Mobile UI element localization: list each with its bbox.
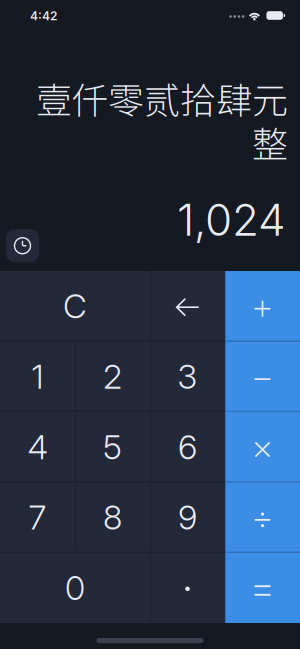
button[interactable]: 9 xyxy=(150,482,225,553)
button[interactable]: 0 xyxy=(0,553,150,623)
staticText: 2 xyxy=(103,356,122,397)
button[interactable]: 5 xyxy=(75,412,150,482)
staticText: 4 xyxy=(27,427,47,467)
staticText: 8 xyxy=(103,497,122,537)
button[interactable]: 4 xyxy=(0,412,75,482)
staticText: 5 xyxy=(103,427,122,467)
button[interactable]: Decimal point xyxy=(150,553,225,623)
staticText: 6 xyxy=(178,427,197,467)
staticText: 整 xyxy=(252,116,288,168)
button[interactable]: 2 xyxy=(75,341,150,412)
button[interactable]: 3 xyxy=(150,341,225,412)
button[interactable]: C xyxy=(0,271,150,341)
staticText: 壹仟零贰拾肆元 xyxy=(36,72,288,124)
staticText: 9 xyxy=(178,497,197,537)
button[interactable]: 8 xyxy=(75,482,150,553)
button[interactable]: Delete xyxy=(150,271,225,341)
button[interactable]: 1 xyxy=(0,341,75,412)
staticText: 0 xyxy=(65,568,85,608)
button[interactable]: Multiply xyxy=(225,412,300,482)
staticText: 7 xyxy=(28,497,46,537)
button[interactable]: Subtract xyxy=(225,341,300,412)
staticText: 4:42 xyxy=(30,9,57,23)
staticText: 1 xyxy=(31,356,43,397)
button[interactable]: History xyxy=(6,229,39,262)
button[interactable]: 7 xyxy=(0,482,75,553)
staticText: 1,024 xyxy=(177,193,286,246)
staticText: 3 xyxy=(177,356,197,397)
button[interactable]: Add xyxy=(225,271,300,341)
staticText: C xyxy=(63,286,87,326)
button[interactable]: Equals xyxy=(225,553,300,623)
button[interactable]: 6 xyxy=(150,412,225,482)
button[interactable]: Divide xyxy=(225,482,300,553)
